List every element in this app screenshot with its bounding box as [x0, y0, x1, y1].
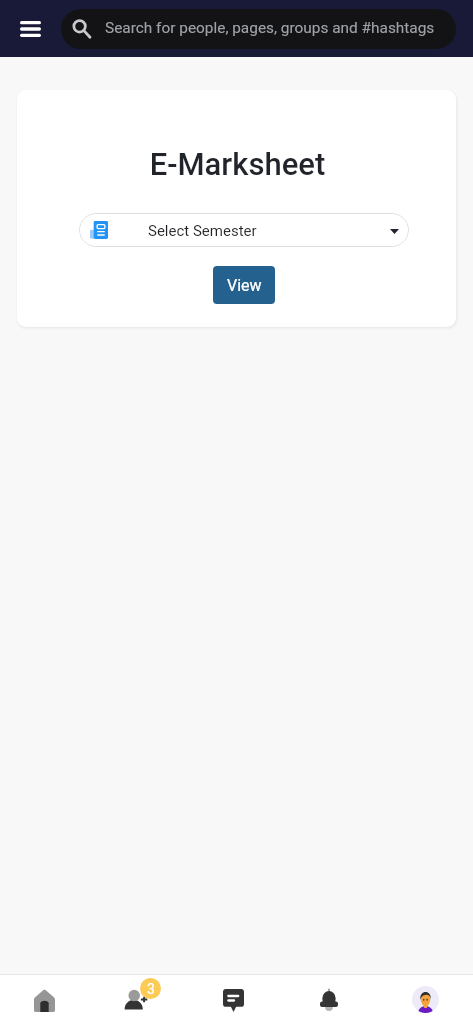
- button[interactable]: Select Semester: [79, 213, 409, 247]
- button[interactable]: Profile: [378, 975, 473, 1024]
- button[interactable]: Notifications: [283, 975, 378, 1024]
- button[interactable]: Menu: [16, 15, 44, 43]
- button[interactable]: Home: [0, 975, 94, 1024]
- staticText: View: [227, 276, 262, 295]
- staticText: 3: [147, 981, 155, 997]
- button[interactable]: View: [213, 266, 275, 304]
- staticText: Select Semester: [148, 222, 257, 240]
- staticText: E-Marksheet: [18, 146, 456, 182]
- button[interactable]: Friend requests, 3 new: [94, 975, 188, 1024]
- button[interactable]: Messages: [188, 975, 283, 1024]
- button[interactable]: Search for people, pages, groups and #ha…: [61, 9, 456, 49]
- staticText: Search for people, pages, groups and #ha…: [105, 19, 435, 37]
